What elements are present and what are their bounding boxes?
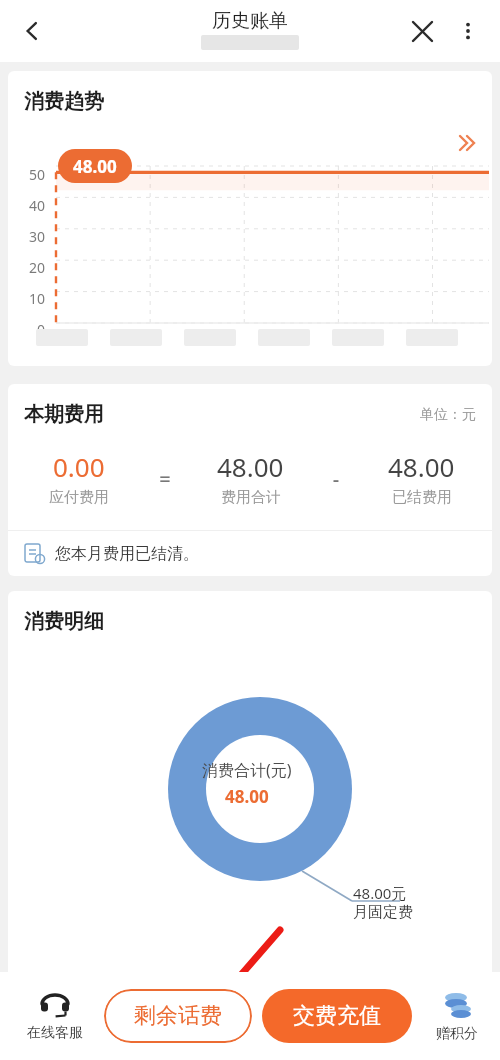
staticText: 单位：元 — [420, 406, 476, 424]
staticText: 40 — [29, 196, 46, 215]
staticText: - — [321, 465, 351, 492]
staticText: 剩余话费 — [134, 1002, 222, 1030]
staticText: 48.00 — [217, 449, 284, 484]
button[interactable]: Back — [8, 7, 56, 55]
staticText: 历史账单 — [212, 9, 288, 33]
staticText: 30 — [29, 227, 46, 246]
staticText: 月固定费 — [38, 971, 110, 994]
staticText: 较上月 — [119, 973, 164, 992]
button[interactable]: 赠积分 — [426, 990, 488, 1043]
staticText: 应付费用 — [49, 488, 109, 507]
staticText: 50 — [29, 165, 46, 184]
staticText: 0 — [37, 320, 46, 339]
staticText: 消费合计(元) — [202, 759, 292, 781]
staticText: 48.00 — [73, 155, 117, 178]
staticText: 消费趋势 — [24, 89, 104, 114]
staticText: 赠积分 — [436, 1025, 478, 1043]
button[interactable]: 剩余话费 — [104, 989, 252, 1043]
staticText: 合计 — [352, 970, 393, 995]
staticText: 48.00元 — [393, 970, 458, 995]
button[interactable]: 交费充值 — [262, 989, 412, 1043]
staticText: 48.00 — [388, 449, 455, 484]
button[interactable]: 在线客服 — [22, 990, 88, 1042]
staticText: -- — [167, 973, 177, 993]
staticText: 您本月费用已结清。 — [55, 544, 199, 564]
staticText: 48.00 — [225, 785, 269, 808]
staticText: 消费明细 — [24, 609, 104, 634]
button[interactable]: More options — [448, 11, 488, 51]
staticText: 20 — [29, 258, 46, 277]
staticText: 交费充值 — [293, 1002, 381, 1030]
button[interactable]: 月固定费 — [22, 970, 478, 995]
staticText: 0.00 — [53, 449, 105, 484]
staticText: 已结费用 — [392, 488, 452, 507]
staticText: 48.00元 — [353, 883, 407, 903]
staticText: 本期费用 — [24, 402, 104, 427]
staticText: = — [150, 465, 180, 492]
staticText: 月固定费 — [353, 903, 413, 922]
button[interactable]: Close — [400, 9, 444, 53]
staticText: 费用合计 — [221, 488, 281, 507]
staticText: 10 — [29, 289, 46, 308]
staticText: 在线客服 — [27, 1024, 83, 1042]
